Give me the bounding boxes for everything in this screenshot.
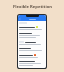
- button[interactable]: [18, 53, 46, 60]
- button[interactable]: [18, 47, 46, 53]
- button[interactable]: Back: [19, 18, 21, 20]
- button[interactable]: [18, 60, 46, 68]
- button[interactable]: [18, 25, 46, 32]
- button[interactable]: [18, 40, 46, 47]
- staticText: Flexible Repetition: [13, 4, 52, 10]
- button[interactable]: [18, 32, 46, 40]
